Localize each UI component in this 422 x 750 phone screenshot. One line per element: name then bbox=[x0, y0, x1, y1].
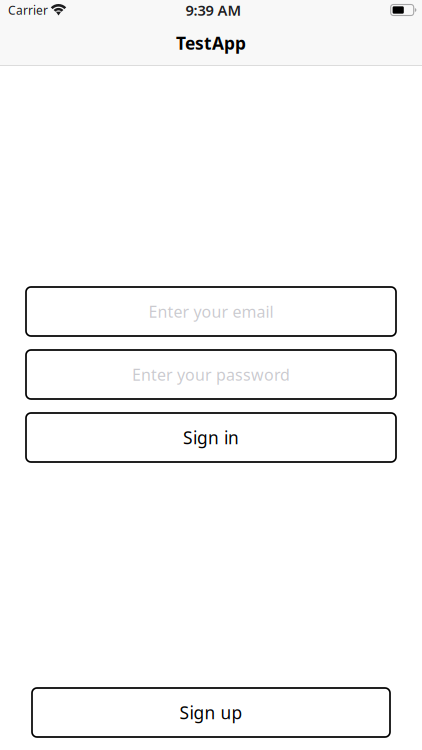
button[interactable]: Sign up bbox=[32, 688, 390, 737]
staticText: Sign in bbox=[183, 426, 239, 449]
staticText: TestApp bbox=[176, 31, 246, 54]
staticText: Enter your email bbox=[148, 301, 273, 322]
staticText: Enter your password bbox=[132, 364, 290, 385]
staticText: Carrier bbox=[8, 2, 48, 18]
staticText: 9:39 AM bbox=[185, 0, 241, 20]
button[interactable]: Sign in bbox=[26, 413, 396, 462]
button[interactable]: Enter your email bbox=[26, 287, 396, 336]
staticText: Sign up bbox=[179, 701, 242, 724]
button[interactable]: Enter your password bbox=[26, 350, 396, 399]
